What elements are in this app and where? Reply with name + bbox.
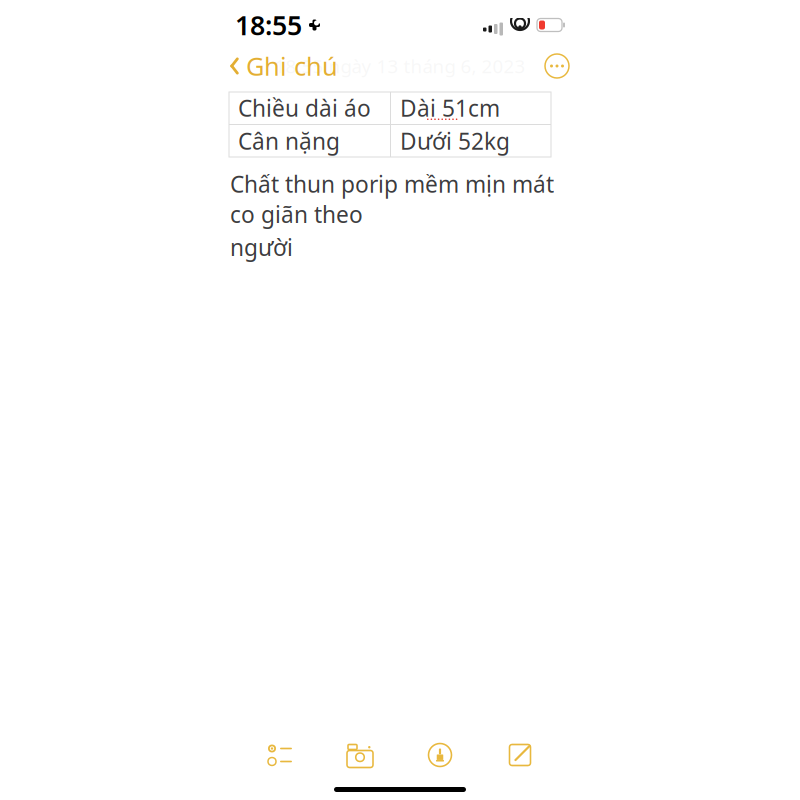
staticText: 18:55 ngày 13 tháng 6, 2023: [274, 54, 525, 78]
staticText: Dài 51cm: [400, 93, 500, 123]
button[interactable]: Ghi chú: [229, 43, 338, 89]
button[interactable]: New note: [480, 733, 560, 777]
staticText: 18:55: [235, 7, 302, 43]
staticText: người: [230, 232, 293, 262]
button[interactable]: Camera: [320, 733, 400, 777]
staticText: Ghi chú: [246, 49, 338, 83]
button[interactable]: Checklist: [240, 733, 320, 777]
staticText: Cân nặng: [238, 126, 340, 156]
button[interactable]: More options: [543, 52, 571, 80]
staticText: Chất thun porip mềm mịn mát co giãn theo: [230, 169, 554, 229]
staticText: Chiều dài áo: [238, 93, 371, 123]
button[interactable]: Markup: [400, 733, 480, 777]
staticText: Dưới 52kg: [400, 126, 510, 156]
